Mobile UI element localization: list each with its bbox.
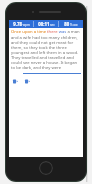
button[interactable]: 9.78 wpm [9,20,33,28]
button[interactable]: 00:11 sec [34,20,58,28]
staticText: 9.78 wpm [13,21,30,27]
button[interactable]: Previous [13,79,18,84]
button[interactable]: Next [25,79,30,84]
button[interactable]: Once upon a time there was a man and a w… [11,29,82,70]
staticText: Once upon a time there was a man and a w… [11,29,82,70]
staticText: 00:11 sec [38,21,55,27]
staticText: 80 % acc [64,21,78,27]
button[interactable]: Home [39,161,53,175]
button[interactable]: 80 % acc [59,20,83,28]
